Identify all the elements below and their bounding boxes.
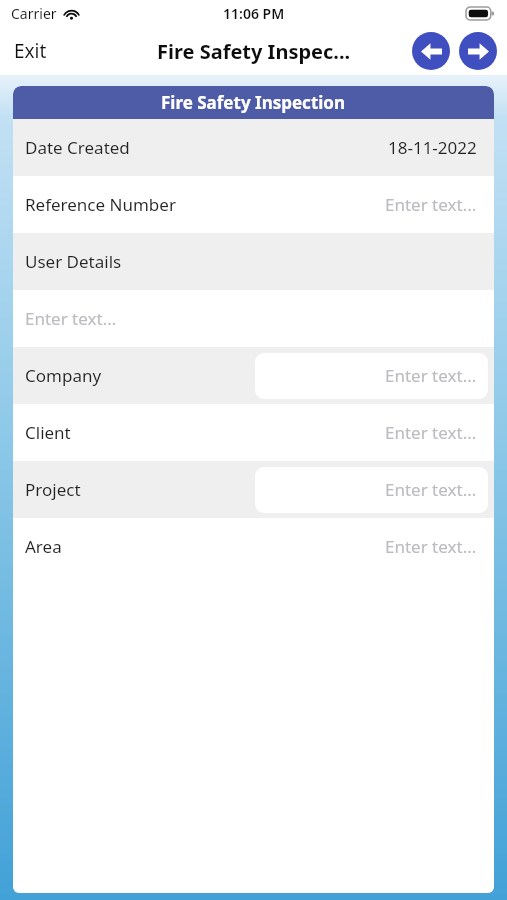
- staticText: Enter text...: [385, 193, 477, 216]
- staticText: Enter text...: [385, 478, 477, 501]
- staticText: 11:06 PM: [223, 4, 285, 23]
- button[interactable]: Reference Number: [13, 176, 494, 233]
- staticText: Date Created: [25, 136, 130, 159]
- staticText: Fire Safety Inspec...: [157, 38, 351, 65]
- staticText: Exit: [14, 38, 47, 64]
- button[interactable]: Enter text...: [13, 290, 494, 347]
- staticText: 18-11-2022: [388, 136, 477, 159]
- button[interactable]: Previous: [412, 32, 450, 70]
- button[interactable]: User Details: [13, 233, 494, 290]
- button[interactable]: Area: [13, 518, 494, 575]
- button[interactable]: Project: [13, 461, 494, 518]
- staticText: Company: [25, 364, 102, 387]
- staticText: Enter text...: [385, 421, 477, 444]
- button[interactable]: Client: [13, 404, 494, 461]
- staticText: Project: [25, 478, 81, 501]
- button[interactable]: Date Created: [13, 119, 494, 176]
- button[interactable]: Company: [13, 347, 494, 404]
- staticText: User Details: [25, 250, 122, 273]
- staticText: Enter text...: [25, 307, 117, 330]
- button[interactable]: Next: [459, 32, 497, 70]
- button[interactable]: Exit: [0, 29, 61, 73]
- staticText: Carrier: [11, 4, 57, 23]
- staticText: Fire Safety Inspection: [161, 91, 346, 114]
- staticText: Reference Number: [25, 193, 176, 216]
- staticText: Area: [25, 535, 62, 558]
- staticText: Client: [25, 421, 71, 444]
- staticText: Enter text...: [385, 535, 477, 558]
- staticText: Enter text...: [385, 364, 477, 387]
